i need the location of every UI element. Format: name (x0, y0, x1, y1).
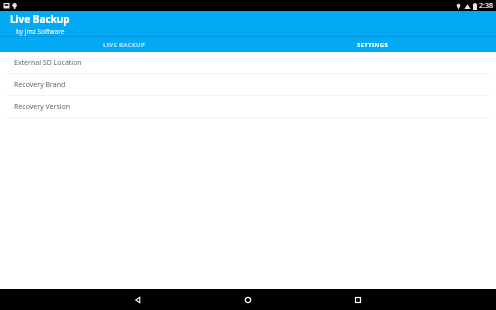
staticText: by Jmz Software (16, 27, 65, 36)
button[interactable]: Home (238, 290, 258, 310)
button[interactable]: Recovery Version (0, 96, 496, 117)
button[interactable]: External SD Location (0, 52, 496, 73)
staticText: External SD Location (14, 58, 82, 68)
button[interactable]: Recovery Brand (0, 74, 496, 95)
staticText: LIVE BACKUP (103, 41, 145, 49)
staticText: Recovery Version (14, 102, 71, 112)
button[interactable]: Back (128, 290, 148, 310)
staticText: Live Backup (10, 12, 70, 26)
button[interactable]: SETTINGS (248, 37, 496, 52)
staticText: Recovery Brand (14, 80, 66, 90)
button[interactable]: Recent apps (348, 290, 368, 310)
button[interactable]: LIVE BACKUP (0, 37, 248, 52)
staticText: 2:38 (479, 1, 493, 11)
staticText: SETTINGS (357, 41, 388, 49)
